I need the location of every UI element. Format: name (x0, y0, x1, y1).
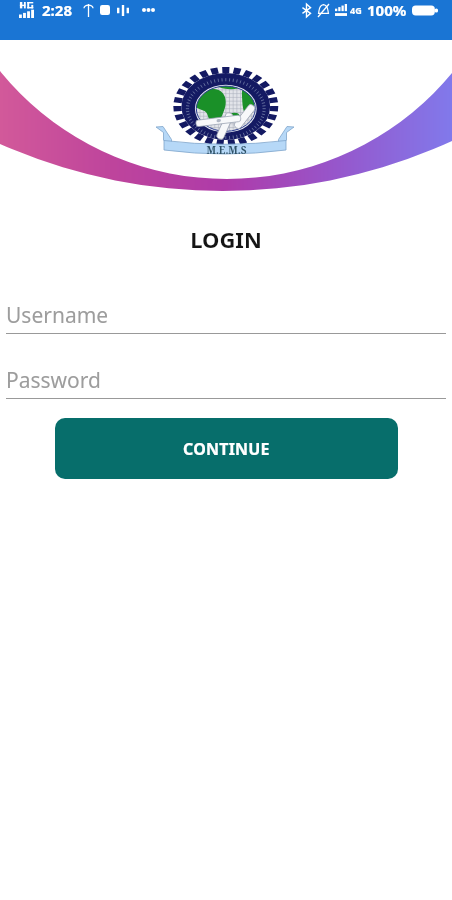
staticText: M.E.M.S (206, 143, 247, 157)
staticText: 100% (367, 0, 407, 20)
staticText: 2:28 (42, 0, 72, 20)
staticText: LOGIN (190, 224, 262, 254)
staticText: 4G (350, 4, 362, 16)
staticText: CONTINUE (183, 438, 270, 460)
staticText: Username (6, 301, 109, 330)
button[interactable]: Username (0, 297, 452, 333)
staticText: Password (6, 366, 101, 395)
button[interactable]: Password (0, 362, 452, 398)
button[interactable]: CONTINUE (55, 418, 398, 479)
